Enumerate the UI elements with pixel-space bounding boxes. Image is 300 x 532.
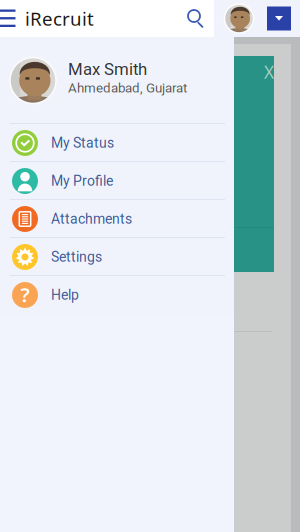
staticText: X <box>264 60 274 83</box>
button[interactable]: ? <box>0 276 234 314</box>
button[interactable]: My Profile <box>0 162 234 200</box>
button[interactable]: Attachments <box>0 200 234 238</box>
staticText: Help <box>51 287 79 303</box>
staticText: Ahmedabad, Gujarat <box>68 80 187 96</box>
button[interactable]: iRecruit <box>25 0 115 37</box>
staticText: Interview — Sales Dept. <box>16 171 179 190</box>
button[interactable]: Account <box>221 0 257 37</box>
staticText: My Profile <box>51 173 113 189</box>
button[interactable]: More options <box>267 0 291 37</box>
staticText: Attachments <box>51 211 132 227</box>
staticText: Today, 11:00 AM IST <box>16 194 151 214</box>
button[interactable]: Search <box>181 0 211 37</box>
button[interactable]: Settings <box>0 238 234 276</box>
staticText: ? <box>20 281 29 308</box>
staticText: My Status <box>51 135 114 151</box>
staticText: iRecruit <box>25 6 94 31</box>
button[interactable]: Menu <box>0 0 20 37</box>
staticText: Settings <box>51 249 102 265</box>
button[interactable]: My Status <box>0 124 234 162</box>
staticText: Max Smith <box>68 59 147 79</box>
